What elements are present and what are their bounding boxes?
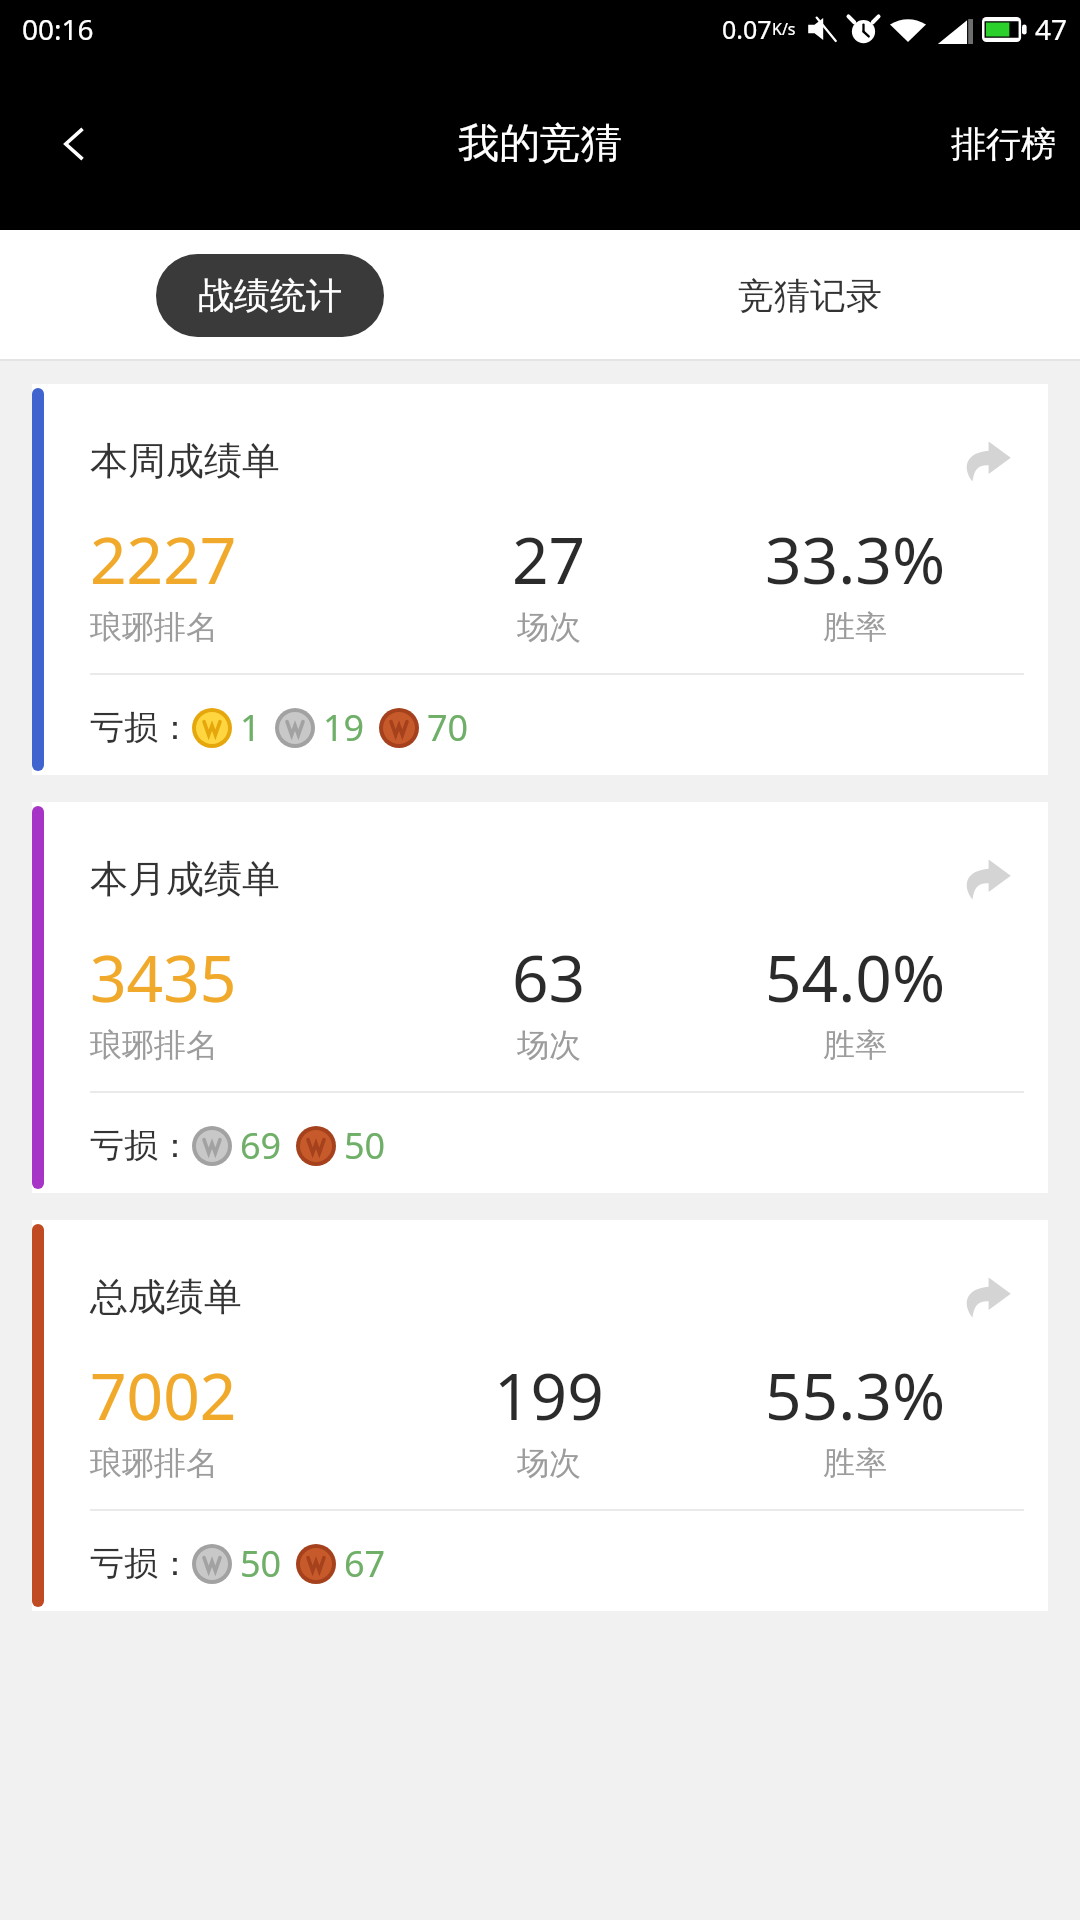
staticText: 0.07: [722, 12, 772, 46]
staticText: 33.3%: [686, 516, 1024, 603]
staticText: 胜率: [686, 1443, 1024, 1483]
button[interactable]: Share: [950, 842, 1024, 916]
staticText: 7002: [90, 1352, 237, 1439]
staticText: 本月成绩单: [90, 855, 280, 903]
staticText: 47: [1035, 10, 1068, 48]
staticText: 本周成绩单: [90, 437, 280, 485]
staticText: 70: [427, 703, 469, 752]
staticText: 我的竞猜: [458, 118, 622, 170]
button[interactable]: Back: [0, 57, 150, 230]
staticText: 场次: [517, 1025, 581, 1065]
staticText: 场次: [517, 1443, 581, 1483]
button[interactable]: Share: [950, 424, 1024, 498]
staticText: 55.3%: [686, 1352, 1024, 1439]
button[interactable]: Share: [950, 1260, 1024, 1334]
button[interactable]: 竞猜记录: [540, 230, 1080, 361]
staticText: 199: [494, 1352, 604, 1439]
button[interactable]: 排行榜: [927, 57, 1080, 230]
staticText: 琅琊排名: [90, 607, 218, 647]
button[interactable]: 战绩统计: [156, 254, 384, 337]
button[interactable]: [32, 802, 1048, 1193]
staticText: 竞猜记录: [738, 273, 882, 318]
staticText: 亏损：: [90, 1124, 192, 1167]
staticText: 67: [344, 1539, 386, 1588]
staticText: 战绩统计: [198, 273, 342, 318]
staticText: 2227: [90, 516, 237, 603]
staticText: 总成绩单: [90, 1273, 242, 1321]
button[interactable]: [32, 384, 1048, 775]
staticText: 63: [512, 934, 586, 1021]
staticText: 1: [240, 703, 261, 752]
staticText: 琅琊排名: [90, 1025, 218, 1065]
staticText: 50: [240, 1539, 282, 1588]
staticText: 琅琊排名: [90, 1443, 218, 1483]
staticText: 亏损：: [90, 706, 192, 749]
staticText: 19: [323, 703, 365, 752]
staticText: 胜率: [686, 1025, 1024, 1065]
staticText: 00:16: [22, 10, 94, 48]
staticText: 胜率: [686, 607, 1024, 647]
staticText: 50: [344, 1121, 386, 1170]
staticText: 27: [512, 516, 586, 603]
staticText: 排行榜: [951, 122, 1056, 166]
button[interactable]: [32, 1220, 1048, 1611]
staticText: K/s: [772, 18, 796, 40]
staticText: 场次: [517, 607, 581, 647]
staticText: 亏损：: [90, 1542, 192, 1585]
staticText: 3435: [90, 934, 237, 1021]
staticText: 54.0%: [686, 934, 1024, 1021]
staticText: 69: [240, 1121, 282, 1170]
